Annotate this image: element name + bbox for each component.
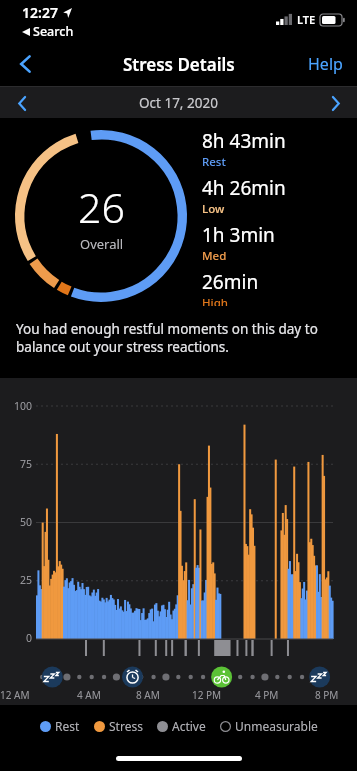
- button[interactable]: Active: [157, 718, 206, 734]
- staticText: LTE: [297, 12, 316, 27]
- staticText: 12:27: [22, 3, 58, 22]
- staticText: 26: [78, 179, 125, 235]
- staticText: 4 AM: [77, 688, 101, 702]
- staticText: You had enough restful moments on this d…: [16, 320, 341, 356]
- staticText: 4 PM: [255, 688, 279, 702]
- staticText: Active: [172, 718, 206, 734]
- staticText: Search: [33, 23, 74, 40]
- staticText: Med: [202, 248, 227, 264]
- staticText: Unmeasurable: [235, 718, 318, 734]
- staticText: Stress: [109, 718, 143, 734]
- staticText: 1h 3min: [202, 222, 275, 248]
- staticText: 0: [0, 631, 32, 645]
- button[interactable]: Unmeasurable: [220, 718, 318, 734]
- staticText: Oct 17, 2020: [139, 94, 218, 112]
- staticText: High: [202, 295, 229, 306]
- button[interactable]: Help: [308, 53, 343, 75]
- staticText: 26min: [202, 269, 259, 295]
- staticText: 75: [0, 457, 32, 471]
- button[interactable]: Stress: [94, 718, 143, 734]
- staticText: 12 AM: [0, 688, 30, 702]
- staticText: Low: [202, 201, 225, 217]
- staticText: 100: [0, 399, 32, 413]
- staticText: 8 AM: [136, 688, 160, 702]
- staticText: Stress Details: [123, 53, 235, 76]
- staticText: Rest: [202, 154, 226, 170]
- staticText: 12 PM: [192, 688, 222, 702]
- staticText: 8h 43min: [202, 128, 286, 154]
- button[interactable]: Next day: [321, 89, 349, 117]
- staticText: Help: [308, 53, 343, 75]
- staticText: Rest: [55, 718, 80, 734]
- staticText: 50: [0, 515, 32, 529]
- staticText: 4h 26min: [202, 175, 286, 201]
- button[interactable]: Rest: [40, 718, 80, 734]
- staticText: 8 PM: [315, 688, 339, 702]
- button[interactable]: Previous day: [8, 89, 36, 117]
- staticText: 25: [0, 573, 32, 587]
- button[interactable]: Back: [6, 44, 46, 84]
- staticText: Overall: [80, 235, 124, 253]
